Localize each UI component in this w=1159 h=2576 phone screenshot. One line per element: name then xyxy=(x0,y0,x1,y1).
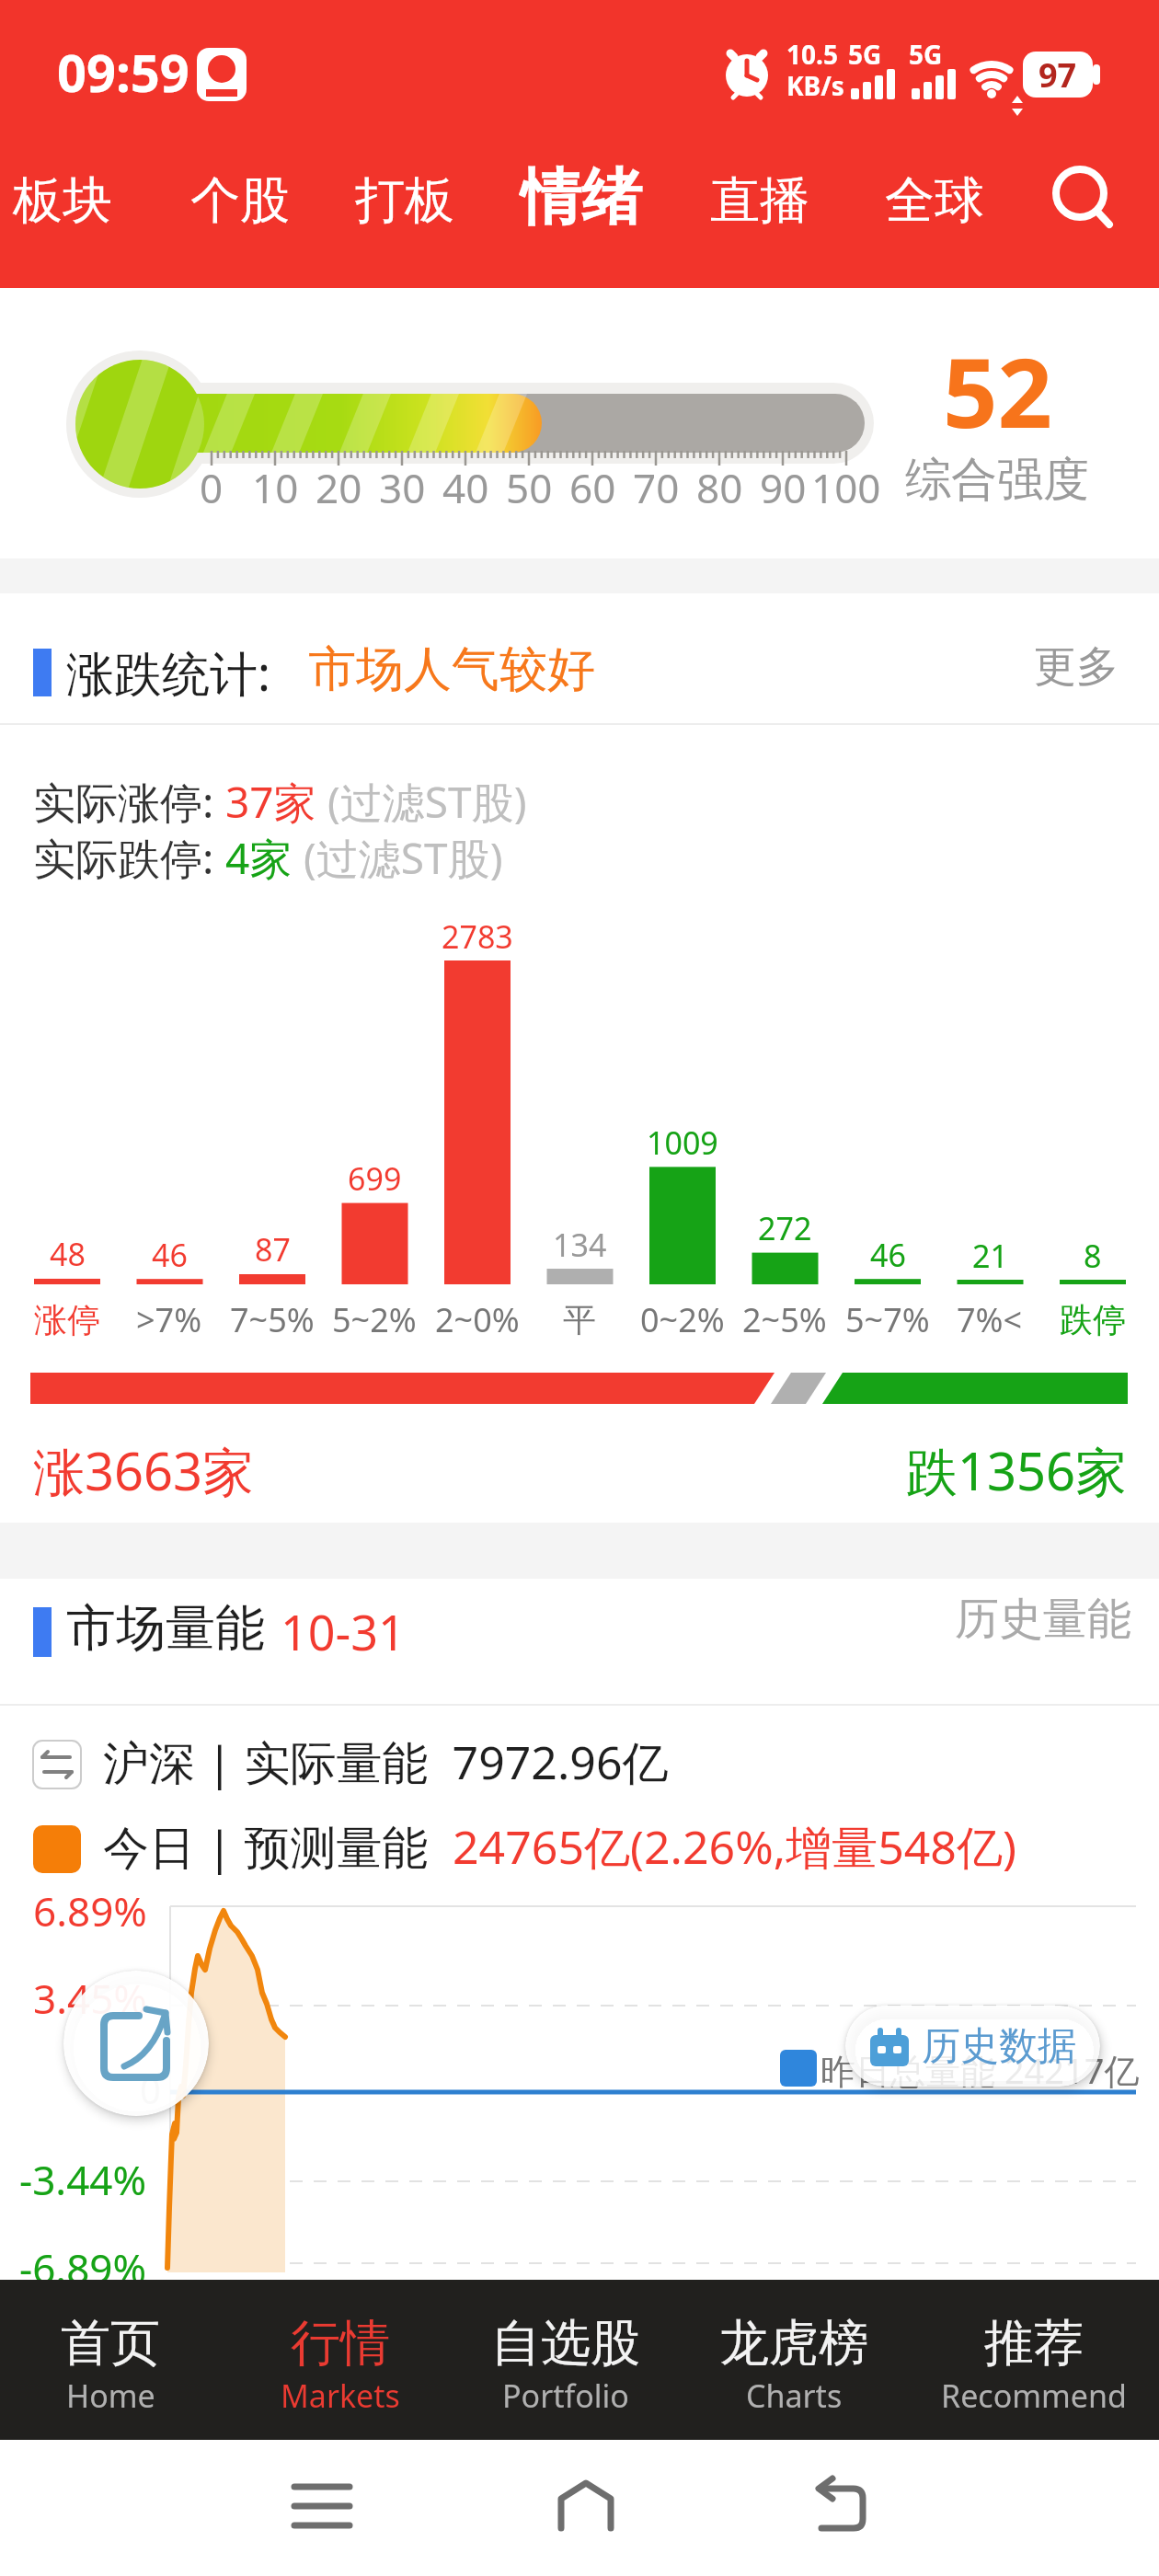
staticText: 行情 xyxy=(291,2312,390,2375)
staticText: 5G xyxy=(909,37,943,72)
button[interactable]: 龙虎榜 xyxy=(688,2293,900,2436)
staticText: Recommend xyxy=(941,2375,1127,2417)
staticText: Portfolio xyxy=(502,2375,629,2417)
button[interactable]: 更多 xyxy=(1021,630,1131,704)
staticText: 2~0% xyxy=(435,1297,520,1342)
staticText: 昨日总量能 24217亿 xyxy=(820,2046,1140,2094)
staticText: 40 xyxy=(442,460,489,510)
staticText: 90 xyxy=(760,460,807,510)
staticText: -3.44% xyxy=(19,2152,147,2207)
button[interactable]: 打板 xyxy=(345,159,465,242)
staticText: 10 xyxy=(252,460,299,510)
staticText: 10-31 xyxy=(281,1599,406,1664)
staticText: 1009 xyxy=(647,1121,718,1164)
staticText: 70 xyxy=(633,460,680,510)
staticText: 跌1356家 xyxy=(906,1435,1128,1505)
staticText: 0~2% xyxy=(640,1297,725,1342)
staticText: 7~5% xyxy=(230,1297,315,1342)
staticText: 平 xyxy=(563,1299,596,1340)
staticText: 更多 xyxy=(1034,640,1119,694)
staticText: 24765亿(2.26%,增量548亿) xyxy=(453,1815,1016,1878)
staticText: 97 xyxy=(1039,52,1077,98)
staticText: 跌停 xyxy=(1060,1299,1126,1340)
button[interactable]: 全球 xyxy=(875,159,994,242)
staticText: 龙虎榜 xyxy=(719,2312,868,2375)
staticText: (过滤ST股) xyxy=(327,773,527,831)
staticText: 09:59 xyxy=(57,37,189,107)
staticText: 市场人气较好 xyxy=(308,639,595,700)
button[interactable]: 首页 xyxy=(5,2293,216,2436)
staticText: 21 xyxy=(972,1235,1008,1277)
staticText: 5~2% xyxy=(332,1297,417,1342)
staticText: 实际涨停: xyxy=(33,773,225,831)
staticText: 涨3663家 xyxy=(33,1435,255,1505)
staticText: 历史量能 xyxy=(955,1592,1131,1647)
staticText: 272 xyxy=(758,1207,812,1249)
button[interactable] xyxy=(540,2461,632,2553)
staticText: Home xyxy=(66,2375,155,2417)
staticText: 自选股 xyxy=(491,2312,640,2375)
button[interactable] xyxy=(794,2461,886,2553)
staticText: 5~7% xyxy=(845,1297,930,1342)
staticText: 0 xyxy=(140,2064,161,2114)
staticText: 87 xyxy=(255,1228,291,1271)
button[interactable]: 行情 xyxy=(235,2293,446,2436)
staticText: 37家 xyxy=(225,773,327,831)
staticText: 实际跌停: xyxy=(33,829,225,887)
staticText: 50 xyxy=(506,460,553,510)
staticText: 46 xyxy=(152,1234,188,1276)
staticText: 7%< xyxy=(957,1297,1023,1342)
staticText: Markets xyxy=(281,2375,400,2417)
staticText: -6.89% xyxy=(19,2240,147,2295)
button[interactable]: 历史量能 xyxy=(938,1587,1131,1651)
staticText: 市场量能 xyxy=(66,1597,265,1660)
staticText: 52 xyxy=(943,326,1052,445)
staticText: 5G xyxy=(848,37,882,72)
staticText: 涨跌统计: xyxy=(66,639,270,705)
button[interactable] xyxy=(1045,156,1128,239)
staticText: 48 xyxy=(50,1233,86,1275)
staticText: 3.45% xyxy=(33,1971,147,2026)
staticText: Charts xyxy=(746,2375,843,2417)
button[interactable]: 个股 xyxy=(180,159,300,242)
staticText: 首页 xyxy=(61,2312,160,2375)
staticText: 板块 xyxy=(13,169,112,232)
staticText: 综合强度 xyxy=(905,451,1089,506)
staticText: 沪深 | 实际量能 7972.96亿 xyxy=(103,1731,669,1793)
button[interactable]: 板块 xyxy=(3,159,122,242)
button[interactable]: 自选股 xyxy=(460,2293,671,2436)
staticText: 今日 | 预测量能 xyxy=(103,1815,453,1878)
staticText: 699 xyxy=(348,1157,402,1200)
staticText: KB/s xyxy=(786,68,844,103)
button[interactable] xyxy=(63,1971,209,2116)
staticText: 2~5% xyxy=(742,1297,827,1342)
staticText: 4家 xyxy=(225,829,304,887)
staticText: 打板 xyxy=(355,169,454,232)
staticText: 60 xyxy=(569,460,616,510)
staticText: 情绪 xyxy=(521,159,642,236)
button[interactable]: 直播 xyxy=(700,159,820,242)
staticText: 8 xyxy=(1084,1235,1102,1277)
staticText: >7% xyxy=(136,1297,202,1342)
staticText: 推荐 xyxy=(984,2312,1084,2375)
staticText: 2783 xyxy=(442,915,513,958)
staticText: 20 xyxy=(316,460,362,510)
staticText: 0 xyxy=(200,460,224,510)
staticText: 个股 xyxy=(190,169,290,232)
button[interactable] xyxy=(276,2461,368,2553)
staticText: 100 xyxy=(811,460,881,510)
staticText: 10.5 xyxy=(786,37,838,72)
staticText: 46 xyxy=(870,1234,906,1276)
staticText: 涨停 xyxy=(34,1299,100,1340)
staticText: 30 xyxy=(379,460,426,510)
staticText: 134 xyxy=(553,1224,607,1266)
staticText: 直播 xyxy=(710,169,809,232)
button[interactable]: 历史数据 xyxy=(845,2006,1100,2087)
staticText: (过滤ST股) xyxy=(304,829,503,887)
staticText: 6.89% xyxy=(33,1883,147,1938)
staticText: 历史数据 xyxy=(922,2022,1076,2071)
staticText: 全球 xyxy=(885,169,984,232)
button[interactable]: 推荐 xyxy=(928,2293,1140,2436)
staticText: 80 xyxy=(696,460,743,510)
button[interactable]: 情绪 xyxy=(508,153,655,241)
